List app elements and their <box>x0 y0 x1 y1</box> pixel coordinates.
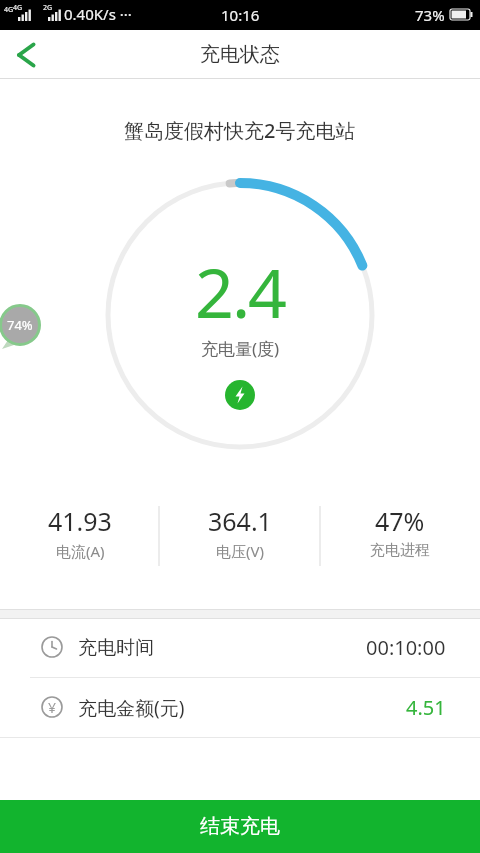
staticText: 2G <box>43 3 53 13</box>
staticText: 73% <box>415 5 445 25</box>
staticText: 充电量(度) <box>201 337 280 360</box>
staticText: 电压(V) <box>216 541 265 561</box>
staticText: 充电进程 <box>370 541 430 560</box>
button[interactable]: 结束充电 <box>0 800 480 853</box>
staticText: 4G <box>4 5 14 15</box>
staticText: 充电时间 <box>78 636 154 660</box>
staticText: 结束充电 <box>200 814 280 839</box>
staticText: 4.51 <box>406 694 446 721</box>
staticText: 充电状态 <box>200 42 280 67</box>
staticText: 00:10:00 <box>366 634 446 661</box>
staticText: 364.1 <box>208 504 272 538</box>
staticText: 10:16 <box>221 5 260 25</box>
staticText: 蟹岛度假村快充2号充电站 <box>124 117 356 144</box>
button[interactable]: 充电时间 <box>0 618 480 677</box>
staticText: 0.40K/s ··· <box>64 4 132 24</box>
staticText: 2.4 <box>195 245 286 325</box>
button[interactable] <box>0 30 56 79</box>
button[interactable]: 充电金额(元) <box>0 678 480 737</box>
staticText: 74% <box>7 316 33 334</box>
staticText: 电流(A) <box>56 541 105 561</box>
staticText: 4G <box>13 3 23 13</box>
staticText: 41.93 <box>48 504 112 538</box>
staticText: ¥ <box>48 698 57 717</box>
staticText: 充电金额(元) <box>78 695 185 721</box>
staticText: 47% <box>375 504 425 538</box>
